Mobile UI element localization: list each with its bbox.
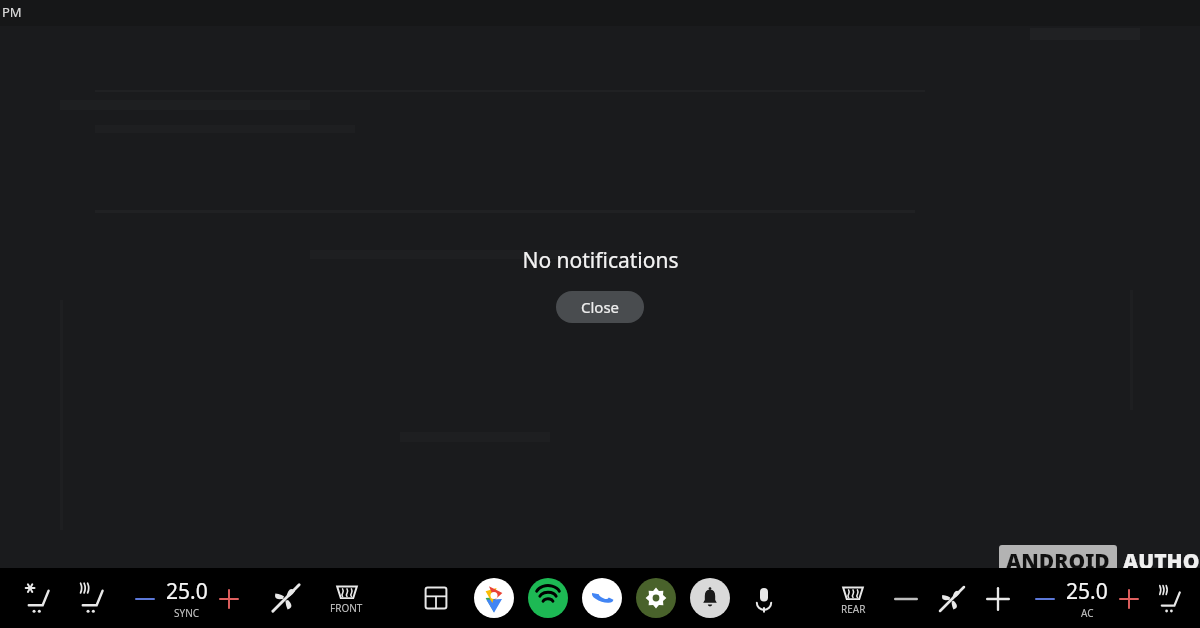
staticText: 25.0: [1066, 577, 1108, 606]
button[interactable]: Maps: [474, 578, 514, 618]
button[interactable]: Decrease temperature: [130, 584, 160, 614]
button[interactable]: Decrease temperature: [1030, 584, 1060, 614]
staticText: REAR: [841, 602, 866, 616]
staticText: AUTHO: [1123, 547, 1200, 576]
button[interactable]: FRONT: [326, 579, 367, 617]
button[interactable]: Fan off: [264, 576, 308, 620]
button[interactable]: Notifications: [690, 578, 730, 618]
button[interactable]: 25.0: [1064, 577, 1110, 620]
button[interactable]: Seat ventilation: [18, 576, 62, 620]
button[interactable]: Increase temperature: [214, 584, 244, 614]
button[interactable]: REAR: [836, 580, 870, 618]
button[interactable]: Phone: [582, 578, 622, 618]
staticText: No notifications: [522, 246, 679, 275]
staticText: ANDROID: [1006, 547, 1110, 576]
button[interactable]: Voice assistant: [744, 578, 784, 618]
staticText: 25.0: [166, 577, 208, 606]
button[interactable]: Increase fan: [980, 581, 1016, 617]
button[interactable]: Apps: [416, 578, 456, 618]
staticText: SYNC: [174, 606, 200, 620]
staticText: PM: [2, 3, 22, 21]
button[interactable]: 25.0: [164, 577, 210, 620]
button[interactable]: Seat heater: [72, 576, 116, 620]
button[interactable]: Fan off: [932, 579, 972, 619]
staticText: AC: [1081, 606, 1094, 620]
button[interactable]: Settings: [636, 578, 676, 618]
button[interactable]: Increase temperature: [1114, 584, 1144, 614]
staticText: Close: [581, 297, 620, 317]
button[interactable]: Decrease fan: [888, 581, 924, 617]
button[interactable]: Close: [556, 291, 644, 323]
button[interactable]: Right seat heater: [1152, 579, 1192, 619]
staticText: FRONT: [330, 601, 363, 615]
button[interactable]: Spotify: [528, 578, 568, 618]
